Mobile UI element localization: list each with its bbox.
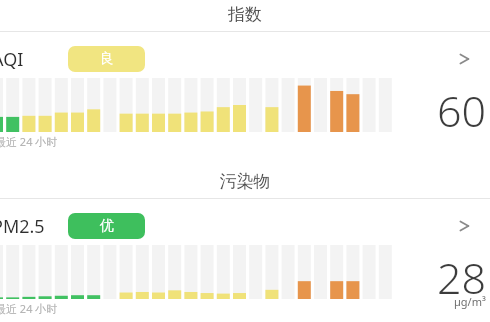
staticText: 污染物	[0, 171, 490, 192]
staticText: 良	[100, 50, 114, 68]
staticText: 最近 24 小时	[0, 134, 58, 149]
staticText: AQI	[0, 47, 24, 72]
button[interactable]: PM2.5	[0, 210, 490, 242]
staticText: 最近 24 小时	[0, 301, 58, 316]
button[interactable]: 良	[68, 46, 145, 72]
staticText: 指数	[0, 4, 490, 25]
button[interactable]: PM2.5 详情	[450, 210, 482, 242]
staticText: µg/m³	[454, 294, 486, 309]
staticText: 优	[100, 217, 114, 235]
staticText: 28	[437, 248, 487, 307]
button[interactable]: 优	[68, 213, 145, 239]
staticText: PM2.5	[0, 214, 45, 239]
staticText: 60	[437, 81, 487, 140]
button[interactable]: AQI	[0, 43, 490, 75]
button[interactable]: AQI 详情	[450, 43, 482, 75]
